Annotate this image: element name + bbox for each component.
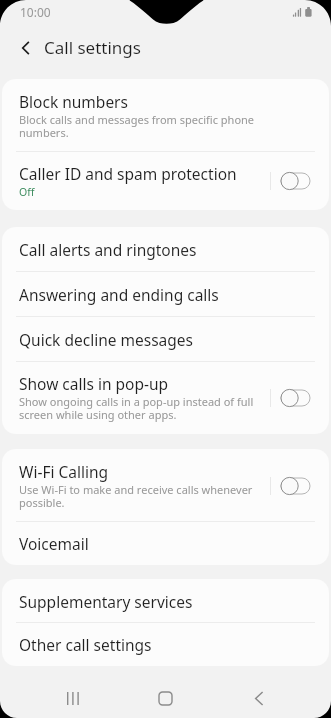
staticText: Show ongoing calls in a pop-up instead o… — [19, 394, 259, 423]
button[interactable]: Block numbers — [2, 79, 329, 152]
button[interactable]: Quick decline messages — [2, 317, 329, 362]
button[interactable]: Supplementary services — [2, 579, 329, 623]
button[interactable]: Recent apps — [50, 686, 95, 710]
staticText: Call settings — [44, 36, 141, 59]
staticText: Off — [19, 185, 35, 199]
button[interactable]: Toggle off — [281, 477, 311, 495]
staticText: Other call settings — [19, 634, 152, 655]
staticText: Quick decline messages — [19, 329, 193, 350]
staticText: Block calls and messages from specific p… — [19, 112, 259, 141]
staticText: Voicemail — [19, 533, 89, 554]
staticText: Answering and ending calls — [19, 284, 219, 305]
button[interactable]: Toggle off — [281, 172, 311, 190]
button[interactable]: Call alerts and ringtones — [2, 227, 329, 272]
button[interactable]: Show calls in pop-up — [2, 362, 329, 434]
staticText: Call alerts and ringtones — [19, 239, 197, 260]
button[interactable]: Caller ID and spam protection — [2, 152, 329, 210]
button[interactable]: Wi-Fi Calling — [2, 449, 329, 522]
staticText: Block numbers — [19, 91, 128, 112]
staticText: Wi-Fi Calling — [19, 461, 109, 482]
button[interactable]: Voicemail — [2, 522, 329, 565]
button[interactable]: Back — [236, 686, 281, 710]
button[interactable]: Toggle off — [281, 389, 311, 407]
button[interactable]: Navigate up — [11, 33, 41, 63]
button[interactable]: Other call settings — [2, 623, 329, 666]
staticText: Supplementary services — [19, 591, 193, 612]
button[interactable]: Home — [143, 686, 188, 710]
staticText: 10:00 — [20, 4, 51, 20]
staticText: Show calls in pop-up — [19, 373, 169, 394]
staticText: Use Wi-Fi to make and receive calls when… — [19, 482, 259, 511]
staticText: Caller ID and spam protection — [19, 163, 237, 184]
button[interactable]: Answering and ending calls — [2, 272, 329, 317]
